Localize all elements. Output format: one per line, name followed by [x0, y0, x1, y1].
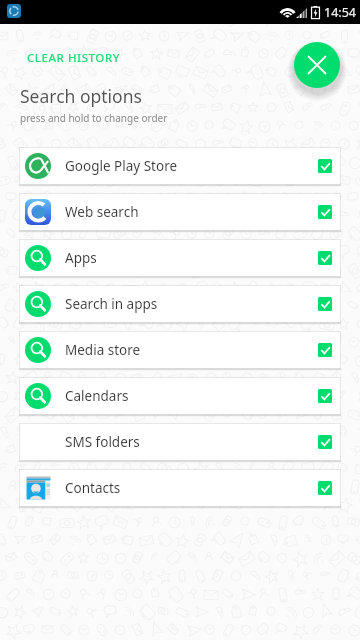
button[interactable]: Apps [20, 240, 340, 276]
button[interactable]: Enabled [318, 435, 332, 449]
staticText: Contacts [65, 479, 121, 497]
button[interactable]: Enabled [318, 159, 332, 173]
button[interactable]: Media store [20, 332, 340, 368]
button[interactable]: Enabled [318, 389, 332, 403]
button[interactable]: Enabled [318, 297, 332, 311]
button[interactable]: Enabled [318, 481, 332, 495]
staticText: CLEAR HISTORY [27, 50, 121, 66]
staticText: Calendars [65, 387, 129, 405]
staticText: Google Play Store [65, 157, 178, 175]
staticText: Search options [20, 84, 142, 108]
staticText: Media store [65, 341, 141, 359]
button[interactable]: Enabled [318, 251, 332, 265]
staticText: SMS folders [65, 433, 140, 451]
button[interactable]: Calendars [20, 378, 340, 414]
staticText: Search in apps [65, 295, 158, 313]
button[interactable]: Google Play Store [20, 148, 340, 184]
button[interactable]: CLEAR HISTORY [11, 38, 137, 78]
button[interactable]: SMS folders [20, 424, 340, 460]
button[interactable]: Contacts [20, 470, 340, 506]
staticText: Web search [65, 203, 139, 221]
button[interactable]: Close [294, 42, 340, 88]
button[interactable]: Web search [20, 194, 340, 230]
button[interactable]: Enabled [318, 343, 332, 357]
button[interactable]: Enabled [318, 205, 332, 219]
staticText: Apps [65, 249, 97, 267]
staticText: 14:54 [324, 4, 356, 21]
staticText: press and hold to change order [20, 111, 168, 125]
button[interactable]: Search in apps [20, 286, 340, 322]
